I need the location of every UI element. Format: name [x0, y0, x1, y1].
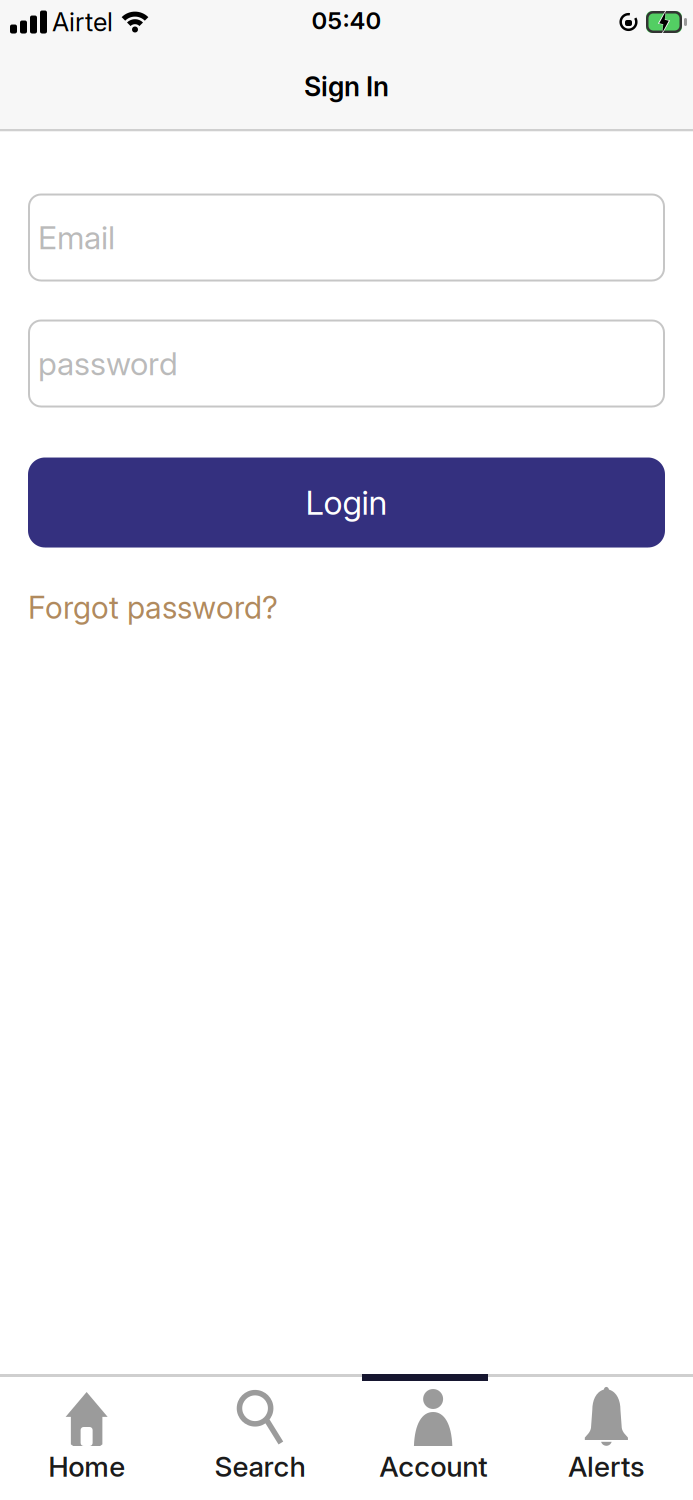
staticText: Account — [379, 1450, 487, 1483]
button[interactable]: Login — [28, 457, 665, 547]
button[interactable]: Alerts — [520, 1389, 693, 1483]
button[interactable]: Account — [346, 1389, 520, 1483]
staticText: Alerts — [568, 1450, 645, 1483]
secureTextField[interactable]: password — [38, 345, 665, 382]
staticText: Home — [48, 1450, 125, 1483]
staticText: Airtel — [52, 7, 113, 37]
staticText: Email — [38, 219, 115, 256]
staticText: password — [38, 345, 178, 382]
staticText: Login — [305, 483, 387, 522]
button[interactable]: Forgot password? — [28, 589, 278, 626]
button[interactable]: Home — [0, 1389, 173, 1483]
staticText: Forgot password? — [28, 589, 278, 626]
textField[interactable]: Email — [38, 219, 665, 256]
staticText: Sign In — [304, 71, 389, 102]
staticText: 05:40 — [311, 6, 381, 35]
staticText: Search — [214, 1450, 305, 1483]
button[interactable]: Search — [173, 1389, 346, 1483]
